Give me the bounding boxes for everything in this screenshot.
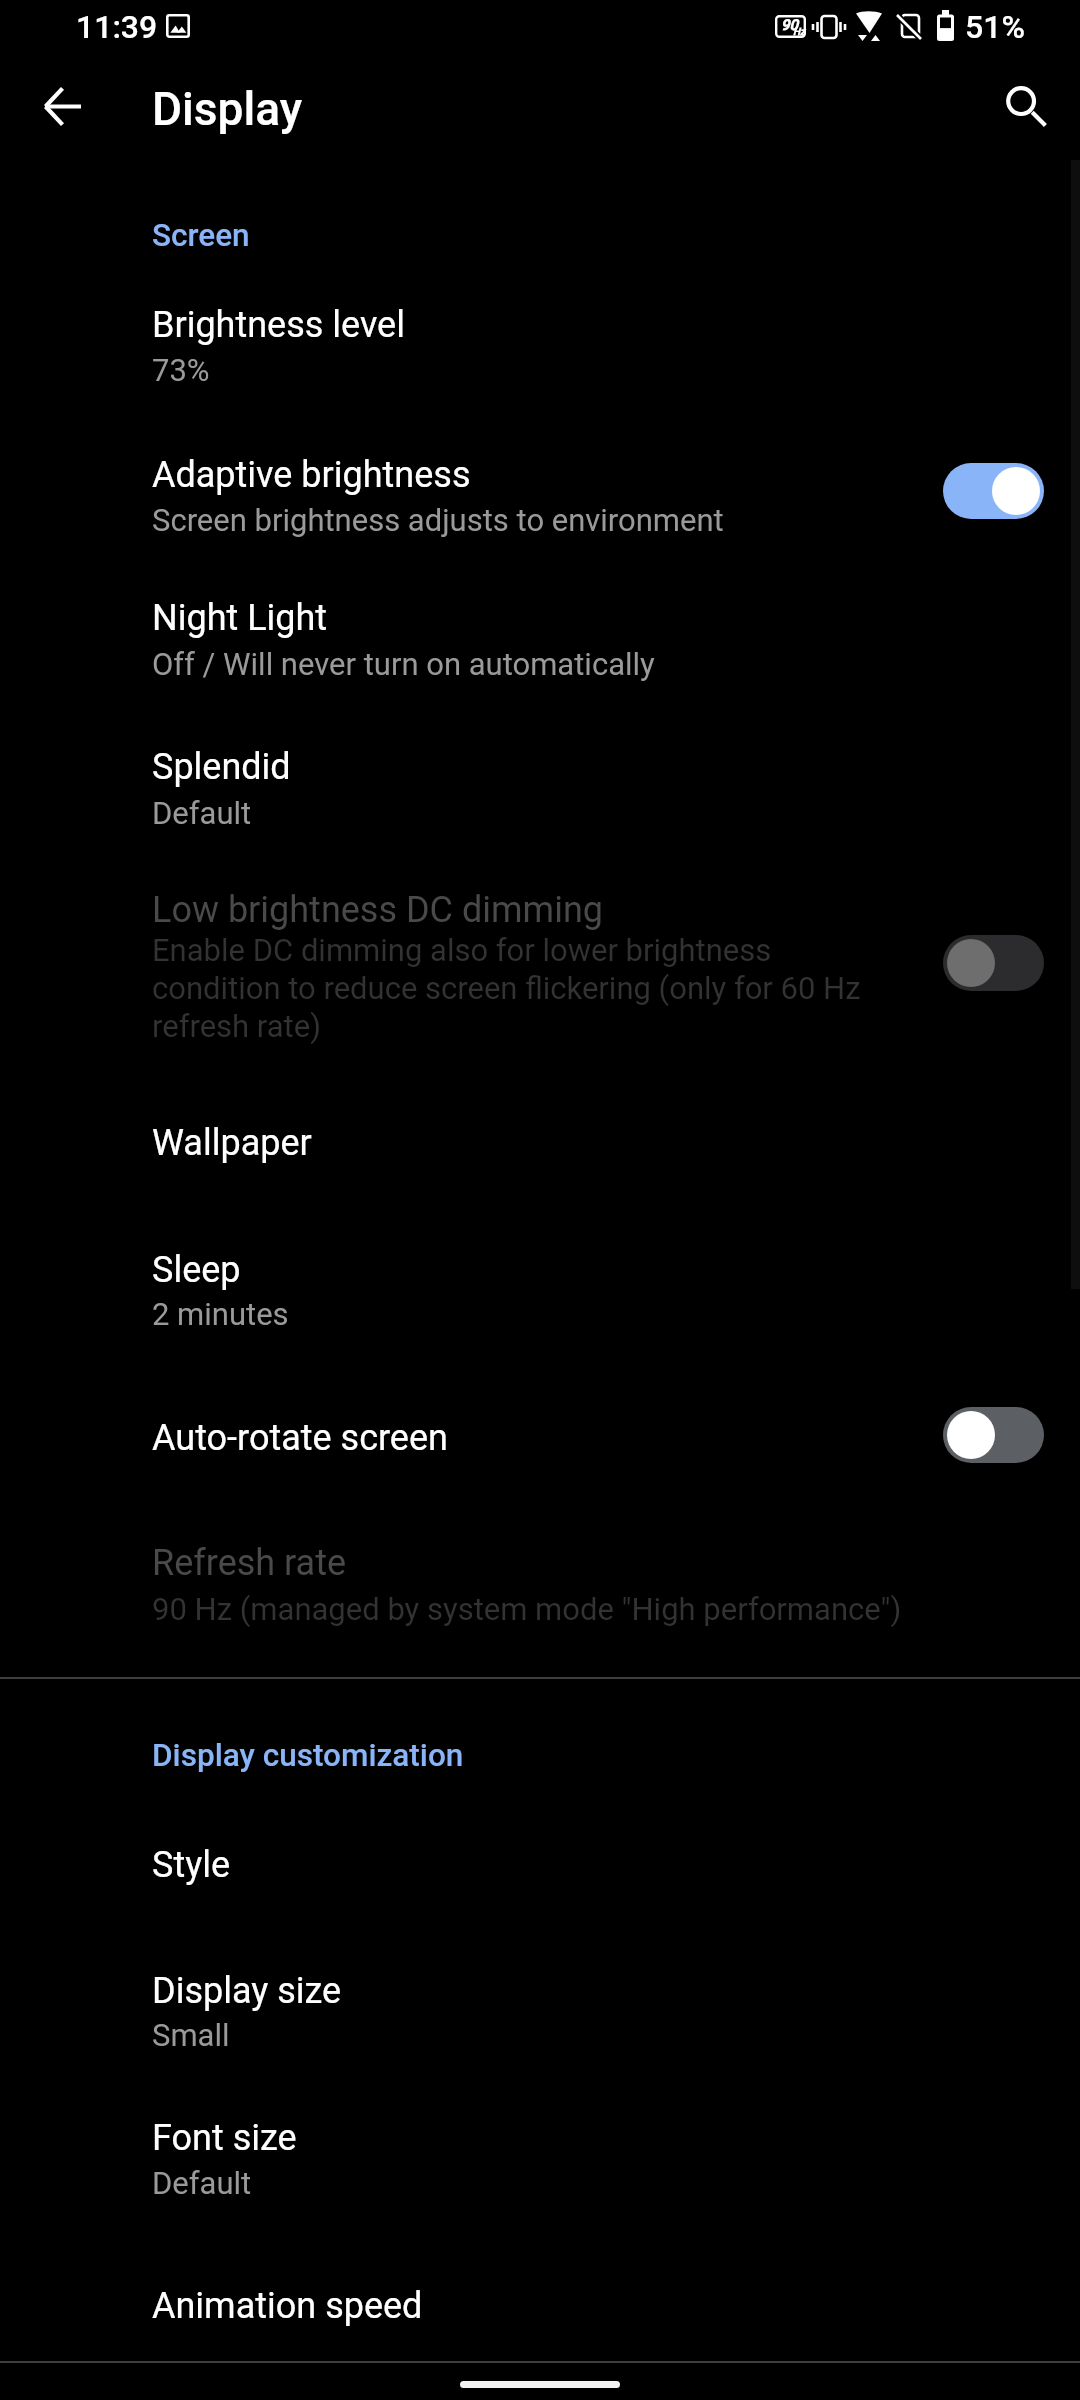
staticText: Font size [152,2117,1080,2159]
staticText: Screen brightness adjusts to environment [152,502,1052,538]
staticText: Wallpaper [152,1122,1080,1164]
button[interactable]: Refresh rate [0,1514,1080,1659]
staticText: Adaptive brightness [152,454,1080,496]
staticText: Display size [152,1970,1080,2012]
button[interactable]: Animation speed [0,2257,1080,2367]
staticText: Enable DC dimming also for lower brightn… [152,932,887,1044]
button[interactable]: Splendid [0,716,1080,856]
staticText: Small [152,2017,1052,2053]
button[interactable]: Wallpaper [0,1094,1080,1204]
staticText: Low brightness DC dimming [152,889,1080,931]
button[interactable]: Toggle off [943,935,1044,991]
button[interactable]: Display size [0,1941,1080,2081]
staticText: Default [152,2165,1052,2201]
button[interactable]: Brightness level [0,272,1080,392]
button[interactable]: Style [0,1815,1080,1925]
staticText: Auto-rotate screen [152,1417,1080,1459]
staticText: Style [152,1844,1080,1886]
staticText: 51% [965,8,1080,46]
button[interactable]: Font size [0,2088,1080,2228]
button[interactable]: Low brightness DC dimming [0,860,1080,1060]
button[interactable]: Sleep [0,1220,1080,1360]
staticText: Refresh rate [152,1542,1080,1584]
button[interactable]: Search [989,69,1069,149]
staticText: 90 [781,16,799,34]
staticText: Hz [793,26,806,38]
staticText: 2 minutes [152,1296,1052,1332]
staticText: Splendid [152,746,1080,788]
staticText: Sleep [152,1249,1080,1291]
button[interactable]: Back [22,66,102,146]
staticText: 90 Hz (managed by system mode "High perf… [152,1591,1052,1627]
staticText: Display [152,82,1080,136]
button[interactable]: Toggle off [943,1407,1044,1463]
button[interactable]: Toggle on [943,463,1044,519]
staticText: Animation speed [152,2285,1080,2327]
staticText: 11:39 [76,8,1076,46]
staticText: Night Light [152,597,1080,639]
button[interactable]: Auto-rotate screen [0,1389,1080,1499]
staticText: 73% [152,352,1052,388]
staticText: Display customization [152,1737,1080,1774]
staticText: Brightness level [152,304,1080,346]
button[interactable]: Night Light [0,568,1080,708]
staticText: Screen [152,217,1080,254]
staticText: Off / Will never turn on automatically [152,646,1052,682]
button[interactable]: Adaptive brightness [0,420,1080,568]
staticText: Default [152,795,1052,831]
